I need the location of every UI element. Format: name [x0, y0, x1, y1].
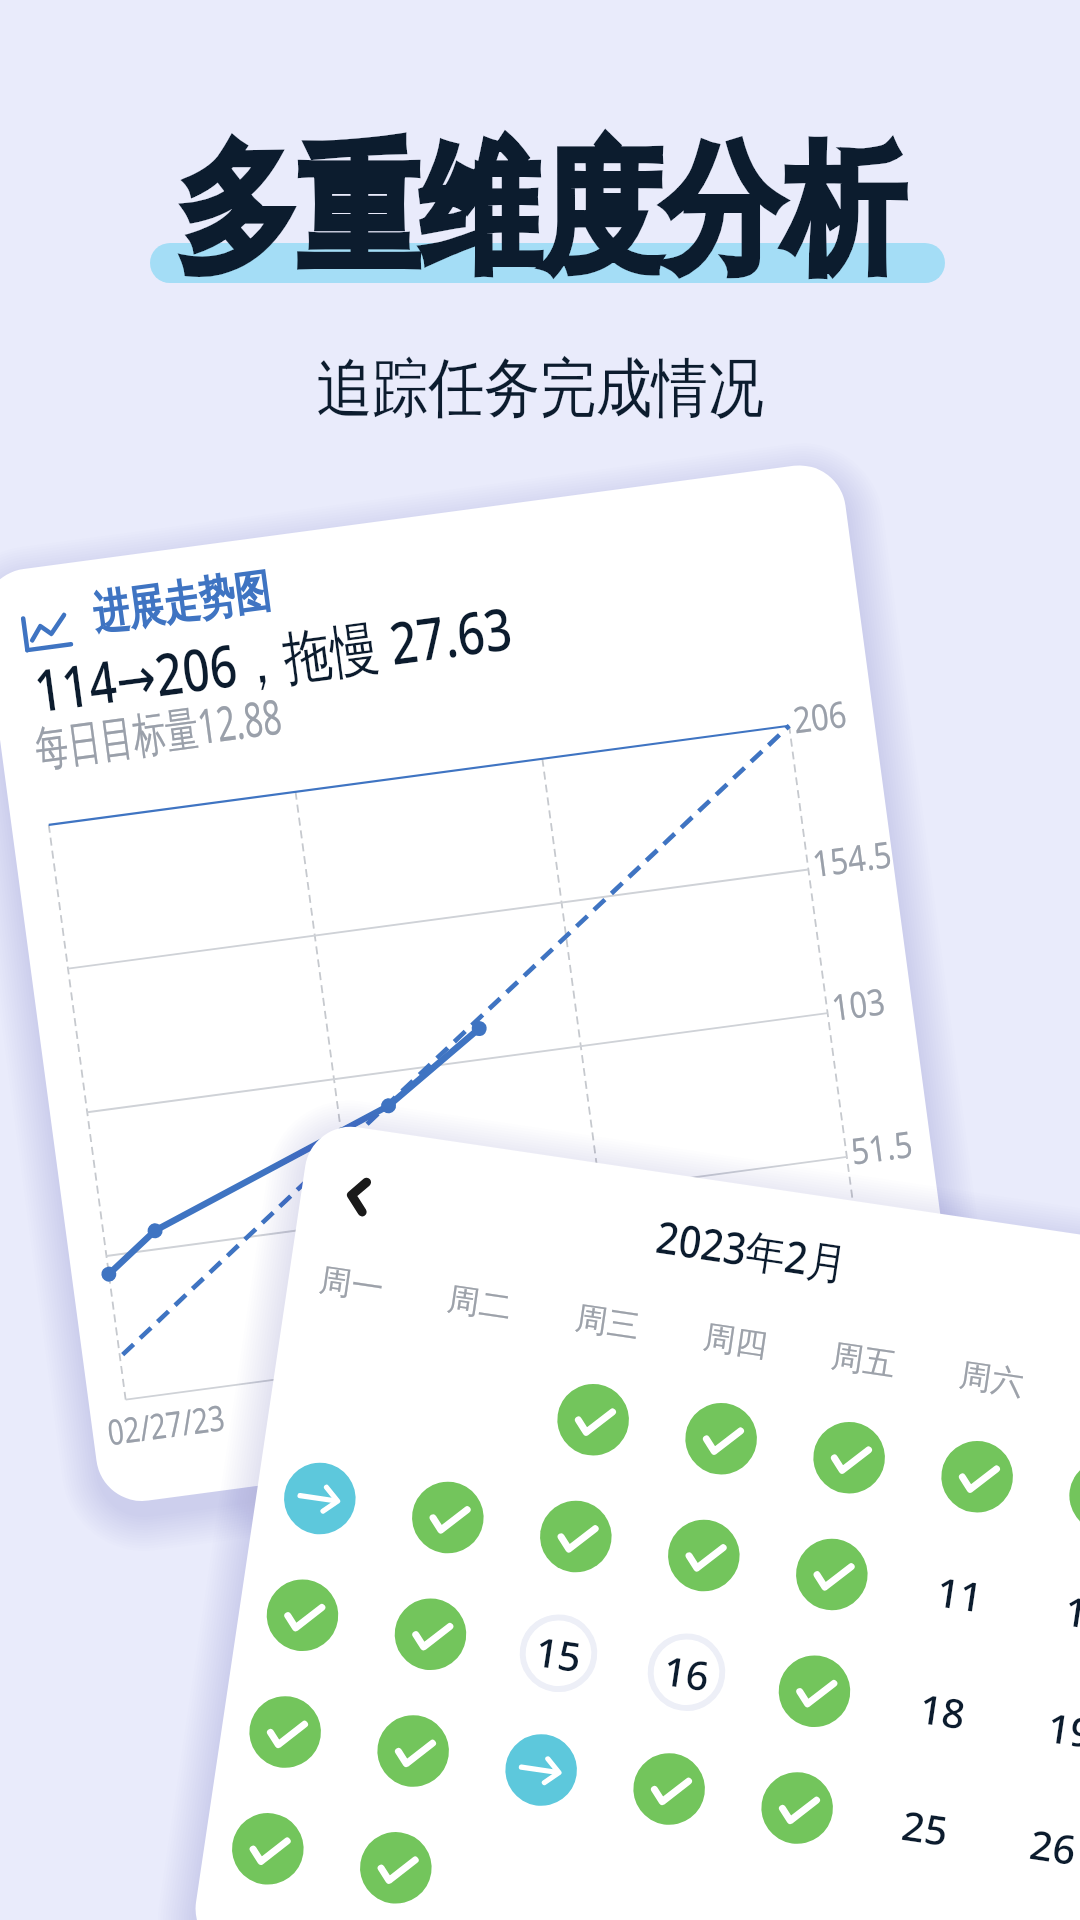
button[interactable]: [0, 0, 1080, 1920]
